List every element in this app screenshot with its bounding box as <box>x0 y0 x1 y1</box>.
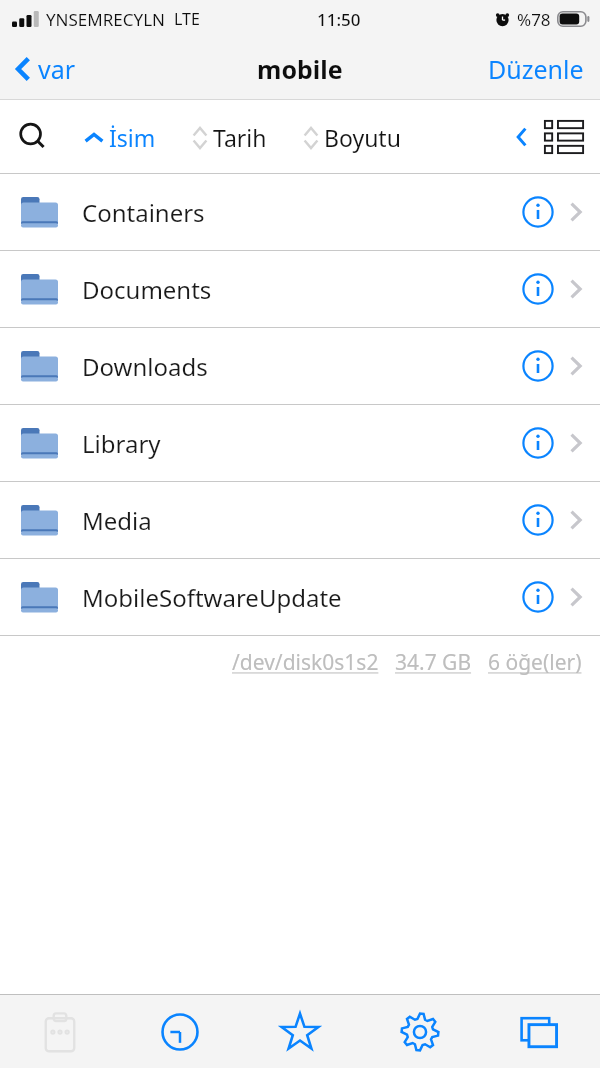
staticText: /dev/disk0s1s2 <box>232 648 379 677</box>
staticText: 6 öğe(ler) <box>488 648 582 677</box>
button[interactable]: Library <box>0 405 600 481</box>
staticText: 11:50 <box>317 8 361 31</box>
staticText: Media <box>82 504 152 537</box>
staticText: Tarih <box>213 122 267 153</box>
staticText: Downloads <box>82 350 208 383</box>
button[interactable]: Info <box>516 267 560 311</box>
staticText: 34.7 GB <box>395 648 472 677</box>
button[interactable]: Downloads <box>0 328 600 404</box>
button[interactable]: Settings <box>360 995 480 1068</box>
staticText: Library <box>82 427 161 460</box>
button[interactable]: List view <box>542 118 586 156</box>
button[interactable]: Düzenle <box>484 46 588 92</box>
staticText: var <box>38 52 76 86</box>
button[interactable]: Info <box>516 190 560 234</box>
button[interactable]: Boyutu <box>301 114 403 161</box>
staticText: Containers <box>82 196 205 229</box>
button[interactable]: Search <box>12 116 54 158</box>
staticText: İsim <box>109 122 156 153</box>
button[interactable]: Tarih <box>190 114 269 161</box>
button[interactable]: Info <box>516 575 560 619</box>
button[interactable]: Containers <box>0 174 600 250</box>
button[interactable]: Favorites <box>240 995 360 1068</box>
button[interactable]: Info <box>516 344 560 388</box>
button[interactable]: Windows <box>480 995 600 1068</box>
button[interactable]: İsim <box>82 114 158 161</box>
staticText: mobile <box>257 52 343 86</box>
staticText: %78 <box>517 8 551 31</box>
button[interactable]: Clipboard <box>0 995 120 1068</box>
staticText: LTE <box>174 8 200 30</box>
staticText: Boyutu <box>324 122 401 153</box>
button[interactable]: Info <box>516 498 560 542</box>
staticText: YNSEMRECYLN <box>46 8 165 31</box>
button[interactable]: MobileSoftwareUpdate <box>0 559 600 635</box>
button[interactable]: Recents <box>120 995 240 1068</box>
staticText: Documents <box>82 273 212 306</box>
button[interactable]: Documents <box>0 251 600 327</box>
button[interactable]: More <box>510 118 534 156</box>
staticText: Düzenle <box>488 52 584 86</box>
button[interactable]: var <box>10 46 82 92</box>
button[interactable]: Media <box>0 482 600 558</box>
button[interactable]: Info <box>516 421 560 465</box>
staticText: MobileSoftwareUpdate <box>82 581 342 614</box>
